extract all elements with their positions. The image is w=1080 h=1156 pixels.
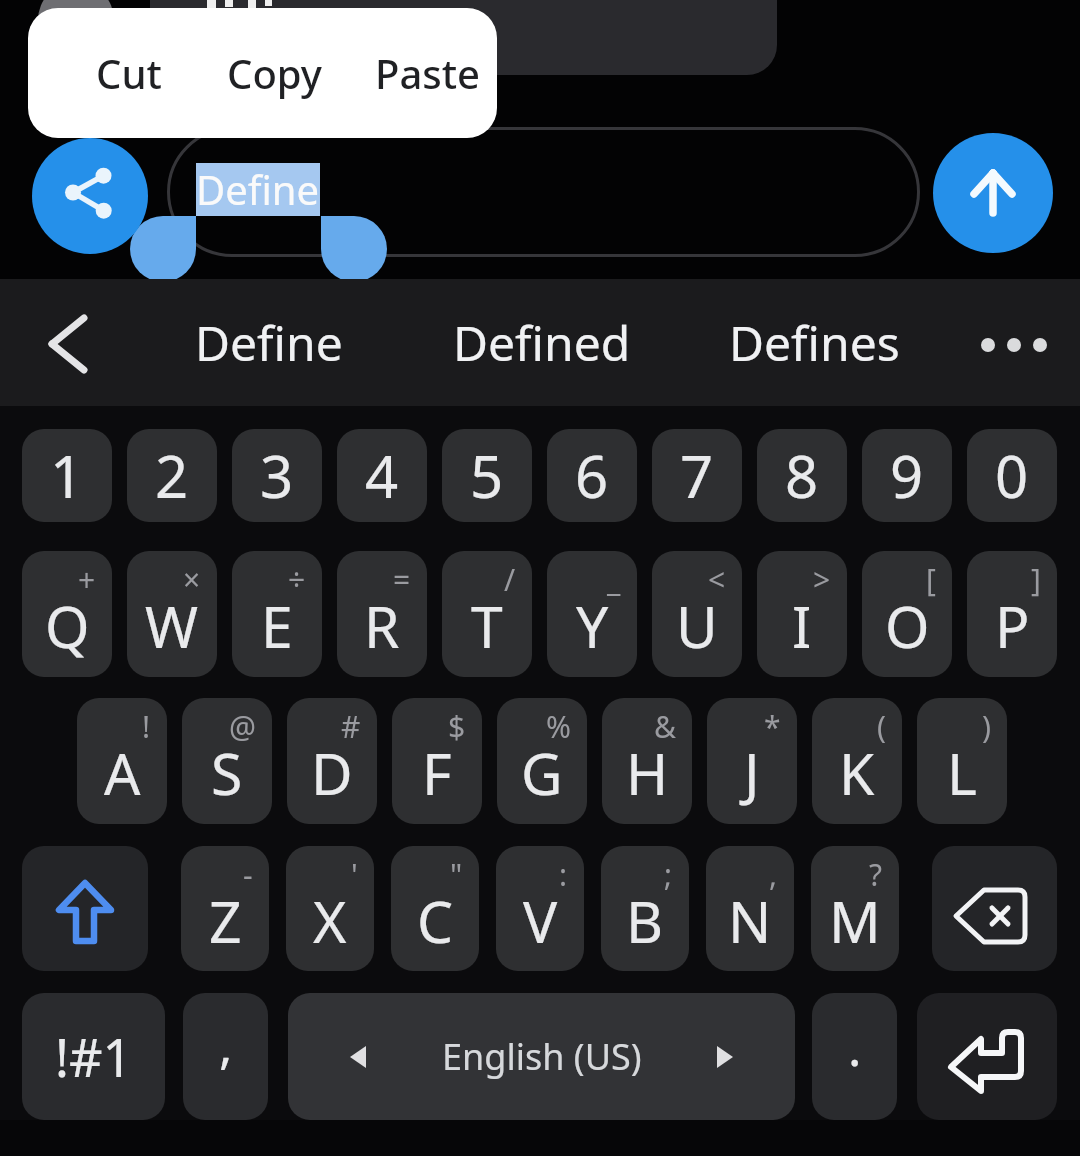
button[interactable]: J (707, 698, 797, 824)
button[interactable]: X (286, 846, 374, 971)
staticText: 0 (995, 436, 1029, 515)
staticText: A (104, 734, 141, 812)
button[interactable]: Copy (194, 8, 354, 138)
staticText: - (243, 854, 253, 895)
staticText: # (341, 706, 361, 747)
button[interactable]: Defines (706, 279, 923, 406)
button[interactable]: F (392, 698, 482, 824)
button[interactable]: R (337, 551, 427, 677)
button[interactable]: W (127, 551, 217, 677)
staticText: V (523, 882, 558, 960)
button[interactable]: . (812, 993, 897, 1120)
staticText: ( (877, 706, 886, 747)
button[interactable]: Q (22, 551, 112, 677)
staticText: & (654, 706, 676, 747)
staticText: I (792, 587, 812, 665)
button[interactable] (932, 846, 1057, 971)
staticText: 4 (365, 436, 399, 515)
staticText: , (219, 1011, 233, 1079)
button[interactable]: 5 (442, 429, 532, 522)
staticText: [ (926, 559, 936, 600)
staticText: Defined (453, 310, 631, 375)
button[interactable] (960, 279, 1070, 406)
button[interactable]: 7 (652, 429, 742, 522)
button[interactable]: , (183, 993, 268, 1120)
button[interactable]: 6 (547, 429, 637, 522)
button[interactable]: Paste (358, 8, 497, 138)
staticText: R (364, 587, 400, 665)
staticText: 2 (155, 436, 189, 515)
button[interactable]: K (812, 698, 902, 824)
staticText: Cut (96, 46, 162, 100)
button[interactable] (130, 216, 196, 282)
button[interactable]: 9 (862, 429, 952, 522)
button[interactable] (32, 138, 148, 254)
staticText: C (417, 882, 454, 960)
button[interactable]: V (496, 846, 584, 971)
button[interactable]: B (601, 846, 689, 971)
button[interactable]: 3 (232, 429, 322, 522)
button[interactable]: U (652, 551, 742, 677)
staticText: P (995, 587, 1030, 665)
button[interactable]: Z (181, 846, 269, 971)
button[interactable]: Cut (68, 8, 190, 138)
staticText: !#1 (55, 1021, 133, 1092)
button[interactable]: H (602, 698, 692, 824)
staticText: * (764, 706, 781, 747)
button[interactable]: !#1 (22, 993, 165, 1120)
staticText: > (813, 559, 831, 600)
button[interactable] (20, 279, 115, 406)
staticText: English (US) (442, 1032, 642, 1081)
button[interactable] (22, 846, 148, 971)
staticText: M (829, 882, 881, 960)
staticText: 9 (890, 436, 924, 515)
button[interactable]: G (497, 698, 587, 824)
button[interactable]: 1 (22, 429, 112, 522)
staticText: ; (664, 854, 673, 895)
button[interactable]: E (232, 551, 322, 677)
button[interactable]: P (967, 551, 1057, 677)
staticText: ? (869, 854, 883, 895)
staticText: O (885, 587, 930, 665)
button[interactable]: C (391, 846, 479, 971)
button[interactable]: A (77, 698, 167, 824)
staticText: = (393, 559, 411, 600)
staticText: E (261, 587, 293, 665)
staticText: ÷ (288, 559, 306, 600)
staticText: K (839, 734, 875, 812)
staticText: Paste (375, 46, 480, 100)
button[interactable]: T (442, 551, 532, 677)
button[interactable]: 8 (757, 429, 847, 522)
staticText: T (471, 587, 503, 665)
button[interactable]: O (862, 551, 952, 677)
button[interactable] (917, 993, 1057, 1120)
staticText: Define (196, 162, 320, 216)
button[interactable]: 2 (127, 429, 217, 522)
button[interactable] (321, 216, 387, 282)
button[interactable]: Define (160, 279, 377, 406)
button[interactable]: Defined (433, 279, 650, 406)
button[interactable]: M (811, 846, 899, 971)
staticText: 6 (575, 436, 609, 515)
staticText: H (626, 734, 669, 812)
button[interactable]: Y (547, 551, 637, 677)
button[interactable]: N (706, 846, 794, 971)
staticText: Z (209, 882, 242, 960)
staticText: X (313, 882, 347, 960)
staticText: × (183, 559, 201, 600)
staticText: 3 (260, 436, 294, 515)
staticText: L (947, 734, 977, 812)
button[interactable] (933, 133, 1053, 253)
button[interactable]: 4 (337, 429, 427, 522)
button[interactable]: D (287, 698, 377, 824)
staticText: W (145, 587, 199, 665)
staticText: " (450, 854, 463, 895)
staticText: Y (576, 587, 609, 665)
staticText: F (422, 734, 452, 812)
button[interactable]: I (757, 551, 847, 677)
button[interactable]: 0 (967, 429, 1057, 522)
button[interactable]: S (182, 698, 272, 824)
button[interactable]: English (US) (288, 993, 795, 1120)
staticText: ! (142, 706, 151, 747)
button[interactable]: L (917, 698, 1007, 824)
